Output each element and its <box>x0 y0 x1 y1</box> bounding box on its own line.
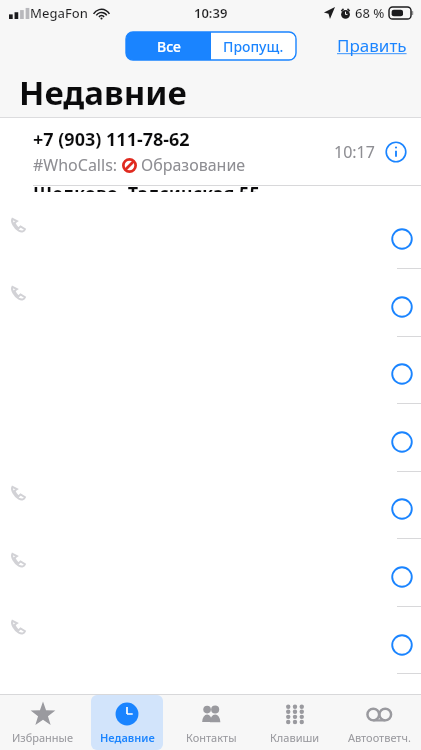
staticText: Избранные <box>12 730 73 745</box>
button[interactable]: Подробнее о вызове <box>391 498 421 520</box>
staticText: Править <box>337 34 407 57</box>
staticText: Щелково, Талсинская 55 <box>33 181 260 201</box>
button[interactable]: Подробнее о вызове <box>391 634 421 656</box>
staticText: Контакты <box>186 730 237 745</box>
button[interactable]: Править <box>337 34 407 57</box>
staticText: 68 % <box>355 4 385 22</box>
staticText: #WhoCalls: <box>33 154 122 176</box>
staticText: Пропущ. <box>223 37 284 56</box>
staticText: Недавние <box>19 70 187 115</box>
button[interactable]: +7 (903) 111-78-62 <box>0 118 421 185</box>
staticText: 10:39 <box>194 4 228 22</box>
button[interactable]: Подробнее о вызове <box>391 363 421 385</box>
button[interactable]: Щелково, Талсинская 55 <box>0 186 421 206</box>
button[interactable]: Контакты <box>175 695 247 750</box>
staticText: Недавние <box>100 730 155 745</box>
button[interactable]: Подробнее о вызове <box>391 296 421 318</box>
staticText: Образование <box>141 154 246 176</box>
staticText: Автоответч. <box>348 730 411 745</box>
staticText: +7 (903) 111-78-62 <box>33 127 190 152</box>
button[interactable]: Клавиши <box>259 695 331 750</box>
button[interactable]: Все <box>126 32 211 60</box>
button[interactable]: Пропущ. <box>211 32 296 60</box>
staticText: 10:17 <box>334 141 375 163</box>
button[interactable]: Избранные <box>6 695 79 750</box>
button[interactable]: Недавние <box>91 695 163 750</box>
button[interactable]: Подробнее о вызове <box>391 566 421 588</box>
button[interactable]: Подробнее о вызове <box>391 431 421 453</box>
staticText: Все <box>157 37 181 56</box>
staticText: MegaFon <box>30 4 88 22</box>
staticText: Клавиши <box>270 730 320 745</box>
button[interactable]: Подробнее о вызове <box>391 228 421 250</box>
button[interactable]: Подробнее о вызове <box>385 141 407 163</box>
button[interactable]: Автоответч. <box>343 695 415 750</box>
